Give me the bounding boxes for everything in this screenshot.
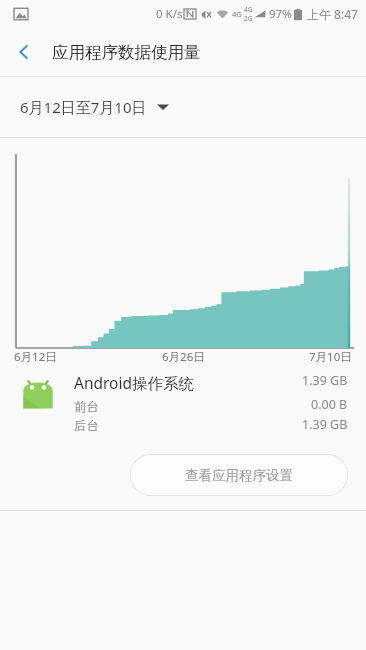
staticText: 1.39 GB bbox=[302, 372, 348, 389]
staticText: Android操作系统 bbox=[74, 372, 195, 393]
staticText: 7月10日 bbox=[309, 349, 352, 365]
staticText: 应用程序数据使用量 bbox=[52, 42, 201, 63]
staticText: 2G bbox=[244, 14, 253, 23]
staticText: 前台 bbox=[74, 399, 99, 415]
staticText: 后台 bbox=[74, 418, 99, 434]
staticText: 上午 8:47 bbox=[307, 6, 358, 22]
button[interactable]: 6月12日至7月10日 bbox=[0, 77, 366, 137]
staticText: 0 K/s bbox=[156, 6, 183, 22]
staticText: 4G bbox=[244, 5, 253, 14]
staticText: 查看应用程序设置 bbox=[185, 467, 293, 484]
button[interactable]: 查看应用程序设置 bbox=[130, 454, 348, 496]
staticText: 97% bbox=[269, 6, 292, 22]
staticText: 6月26日 bbox=[162, 349, 205, 365]
staticText: 1.39 GB bbox=[302, 416, 348, 433]
staticText: 4G bbox=[232, 9, 242, 19]
button[interactable]: Android操作系统 bbox=[0, 366, 366, 440]
staticText: 0.00 B bbox=[311, 396, 348, 413]
staticText: 6月12日至7月10日 bbox=[20, 97, 147, 117]
staticText: 6月12日 bbox=[14, 349, 57, 365]
button[interactable]: Back bbox=[0, 28, 48, 76]
